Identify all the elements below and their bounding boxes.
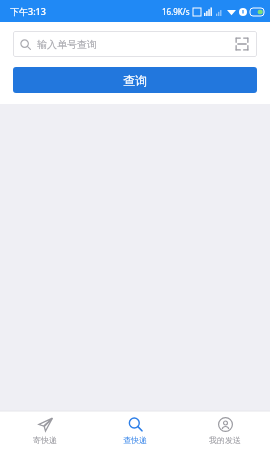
button[interactable]: 扫描: [234, 36, 250, 52]
button[interactable]: 寄快递: [0, 411, 90, 450]
staticText: 下午3:13: [10, 5, 46, 17]
staticText: 查询: [123, 73, 147, 88]
button[interactable]: 查询: [13, 67, 257, 93]
staticText: 16.9K/s: [162, 6, 190, 17]
staticText: 我的发送: [209, 435, 241, 445]
button[interactable]: 查快递: [90, 411, 180, 450]
button[interactable]: 我的发送: [180, 411, 270, 450]
button[interactable]: 输入单号查询: [13, 31, 257, 57]
staticText: 输入单号查询: [37, 38, 234, 51]
staticText: 寄快递: [33, 435, 57, 445]
staticText: 查快递: [123, 435, 147, 445]
